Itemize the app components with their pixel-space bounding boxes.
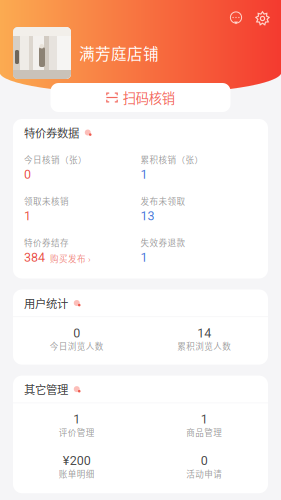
staticText: 今日浏览人数 [50,340,104,352]
staticText: 1 [201,412,208,427]
button[interactable]: 1 [140,414,268,436]
button[interactable]: 今日核销（张） [24,156,140,179]
staticText: 累积核销（张） [140,153,203,166]
staticText: ¥200 [63,453,91,468]
button[interactable]: Settings [255,11,270,26]
staticText: 失效券退款 [140,236,185,249]
staticText: 0 [201,453,208,468]
button[interactable]: 0 [13,328,140,350]
staticText: 满芳庭店铺 [79,42,159,64]
staticText: 特价券结存 [24,236,69,249]
staticText: 384 [24,250,45,265]
staticText: 0 [24,167,31,182]
staticText: 扫码核销 [123,88,175,107]
staticText: 13 [140,209,154,223]
button[interactable]: ¥200 [13,456,140,477]
staticText: 1 [140,167,147,182]
button[interactable]: 领取未核销 [24,197,140,221]
button[interactable]: 累积核销（张） [140,156,257,179]
staticText: 1 [24,209,31,223]
button[interactable]: 特价券结存 [24,239,140,262]
button[interactable]: 扫码核销 [50,83,230,112]
staticText: 0 [73,326,80,340]
staticText: 发布未领取 [140,195,185,207]
button[interactable]: 14 [140,328,268,350]
button[interactable]: 失效券退款 [140,239,257,262]
staticText: 累积浏览人数 [177,340,231,352]
staticText: 购买发布 › [50,252,91,265]
staticText: 1 [140,250,147,265]
button[interactable]: 1 [13,414,140,436]
button[interactable]: 发布未领取 [140,197,257,221]
staticText: 商品管理 [186,426,222,438]
staticText: 其它管理 [24,381,68,397]
staticText: 特价券数据 [24,124,79,141]
button[interactable]: 0 [140,456,268,477]
staticText: 评价管理 [59,426,95,438]
staticText: 领取未核销 [24,195,69,207]
staticText: 1 [73,412,80,427]
button[interactable]: Messages [229,11,243,25]
staticText: 活动申请 [186,467,222,480]
staticText: 账单明细 [59,467,95,480]
staticText: 14 [197,326,211,340]
staticText: 今日核销（张） [24,153,87,166]
staticText: 用户统计 [24,295,68,311]
